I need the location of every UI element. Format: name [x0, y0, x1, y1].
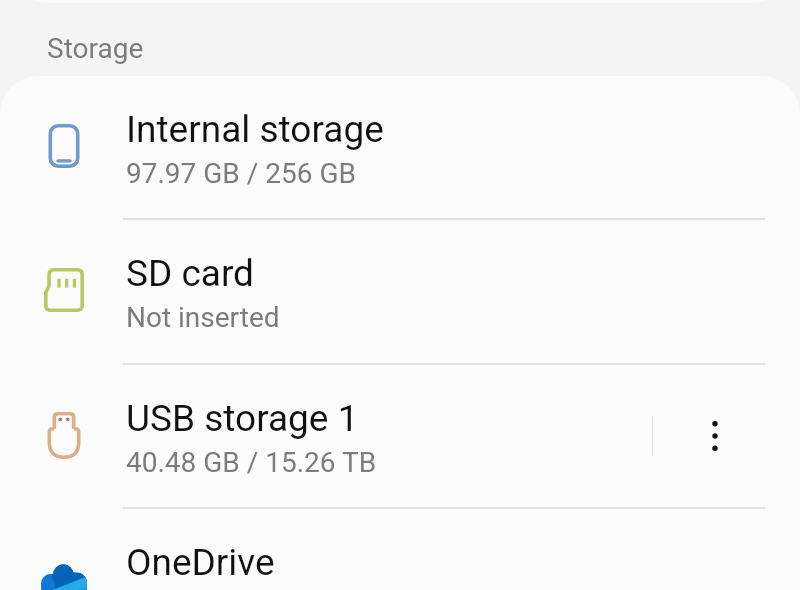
- staticText: USB storage 1: [126, 397, 359, 440]
- staticText: 40.48 GB / 15.26 TB: [126, 446, 377, 479]
- button[interactable]: USB storage 1: [0, 379, 800, 517]
- staticText: OneDrive: [126, 541, 275, 584]
- staticText: Not inserted: [126, 301, 280, 334]
- staticText: Internal storage: [126, 108, 384, 151]
- button[interactable]: SD card: [0, 234, 800, 372]
- staticText: SD card: [126, 252, 254, 295]
- staticText: 97.97 GB / 256 GB: [126, 157, 356, 190]
- button[interactable]: OneDrive: [0, 523, 800, 590]
- button[interactable]: Internal storage: [0, 90, 800, 228]
- button[interactable]: More options: [672, 392, 757, 480]
- staticText: Storage: [47, 32, 144, 65]
